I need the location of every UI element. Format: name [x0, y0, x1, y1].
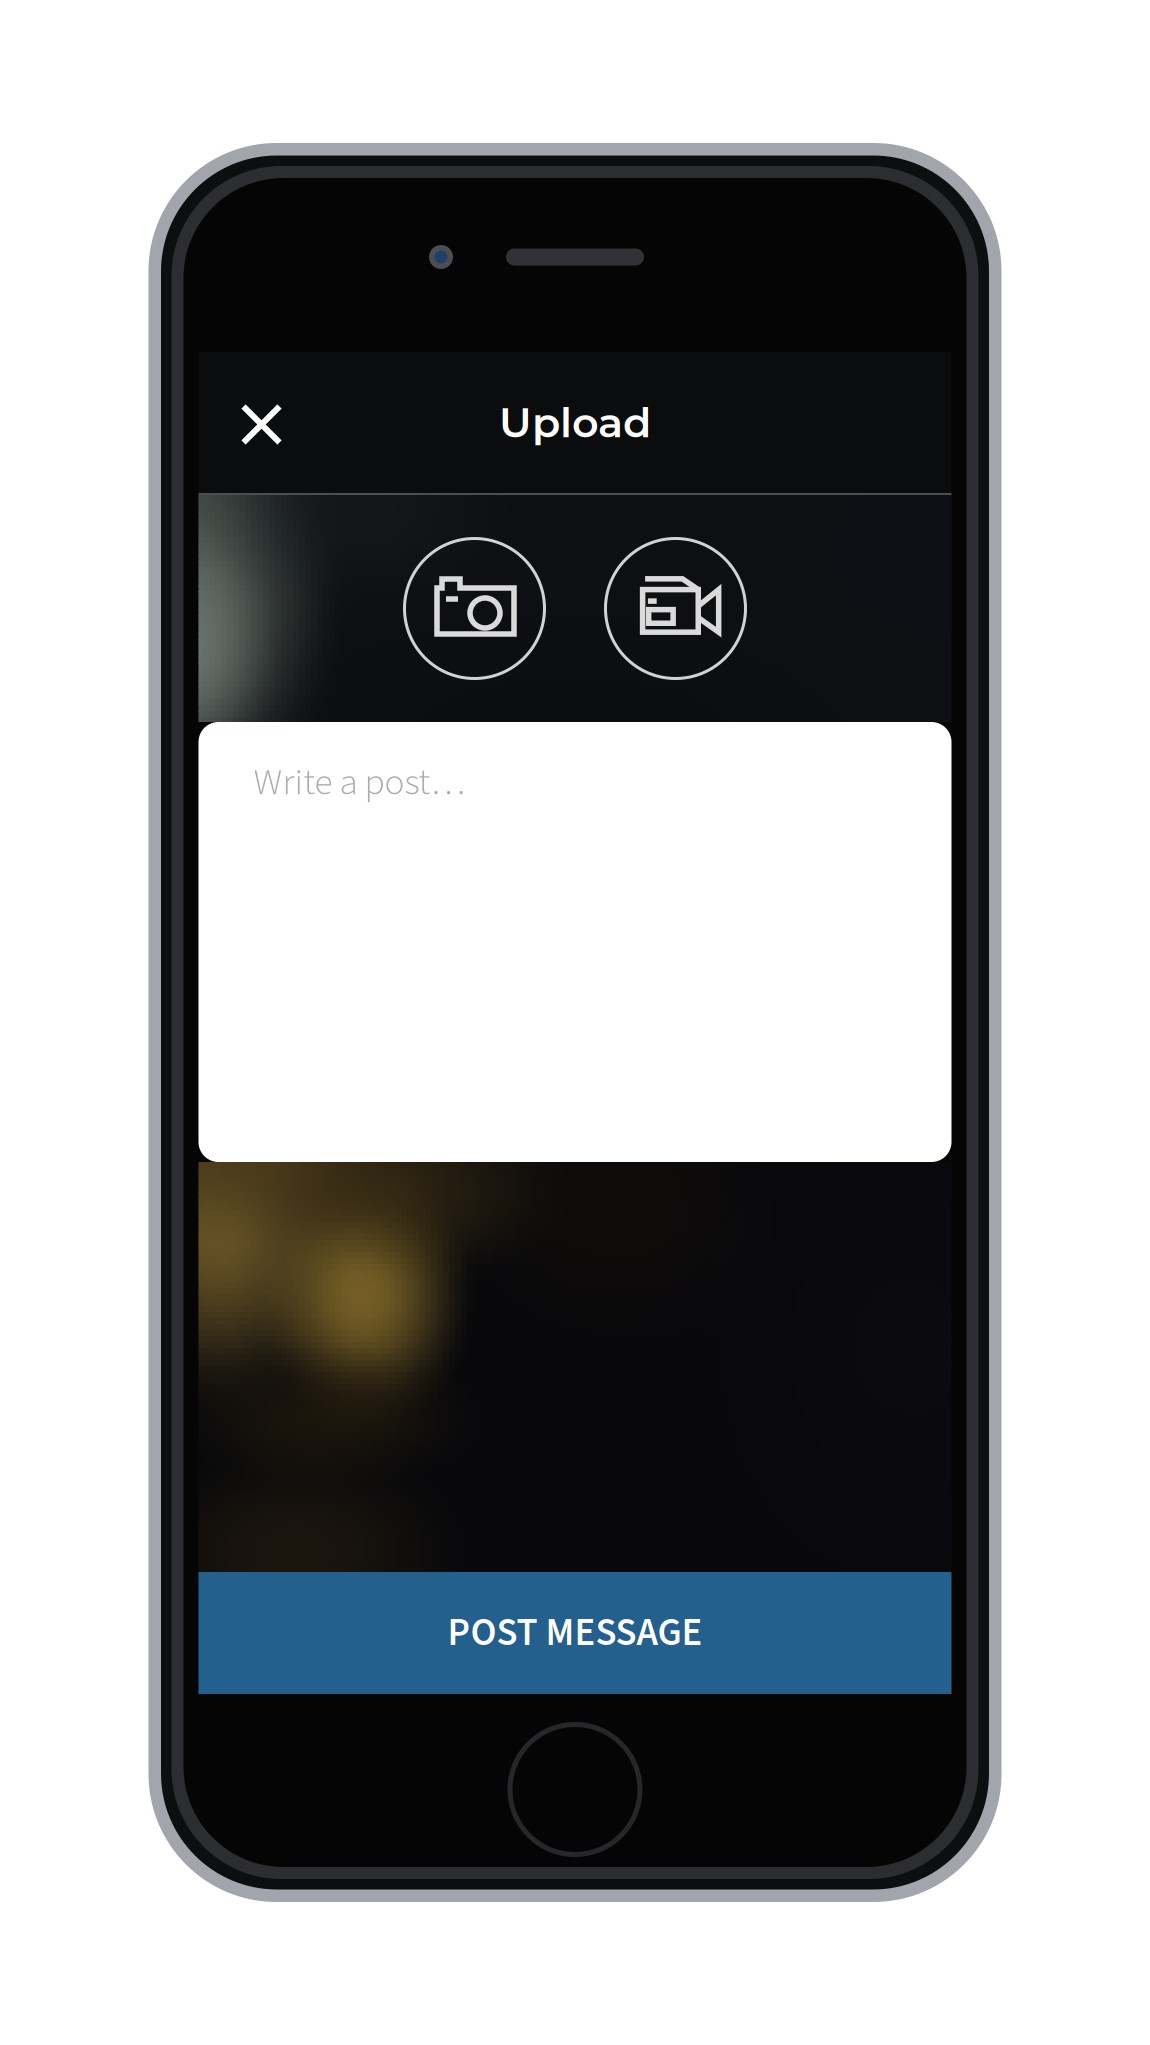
button[interactable]: Close — [198, 352, 322, 493]
button[interactable]: Take photo — [404, 538, 544, 678]
staticText: Upload — [499, 397, 651, 448]
staticText: POST MESSAGE — [447, 1605, 702, 1661]
button[interactable]: Record video — [605, 538, 745, 678]
button[interactable]: POST MESSAGE — [198, 1572, 951, 1694]
staticText: Write a post… — [253, 756, 465, 809]
